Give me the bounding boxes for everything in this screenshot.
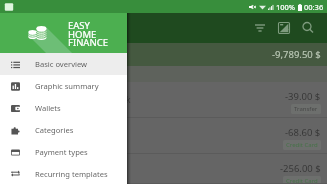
button[interactable]: Wallets — [0, 97, 127, 119]
button[interactable]: Chart — [272, 16, 296, 40]
staticText: -39.00 $ — [285, 90, 321, 103]
button[interactable]: Payment types — [0, 141, 127, 163]
staticText: Wallets — [35, 103, 61, 113]
button[interactable]: Monthly shopping payment — [0, 118, 327, 154]
staticText: Credit Card — [286, 141, 318, 149]
staticText: Categories — [35, 125, 74, 135]
staticText: -9,789.50 $ — [272, 48, 321, 61]
staticText: -68.60 $ — [285, 126, 321, 139]
staticText: Monthly shopping payment — [10, 130, 121, 142]
staticText: Payment types — [35, 147, 88, 157]
button[interactable]: Transfer of money to the bank — [0, 82, 327, 118]
button[interactable]: Recurring templates — [0, 163, 127, 184]
staticText: Recurring templates — [35, 169, 108, 179]
staticText: Transfer — [294, 105, 318, 113]
button[interactable]: Rent — [0, 154, 327, 184]
button[interactable]: Graphic summary — [0, 75, 127, 97]
staticText: 100% — [276, 2, 296, 12]
staticText: Graphic summary — [35, 81, 99, 91]
staticText: 00:36 — [304, 2, 324, 12]
button[interactable]: Filter — [248, 16, 272, 40]
staticText: Transfer of money to the bank — [10, 94, 131, 106]
button[interactable]: Categories — [0, 119, 127, 141]
staticText: Basic overview — [35, 59, 88, 69]
button[interactable]: Search — [296, 16, 320, 40]
staticText: Rent — [10, 163, 29, 175]
staticText: Credit Card — [286, 177, 318, 183]
button[interactable]: Basic overview — [0, 53, 127, 75]
staticText: -256.00 $ — [280, 162, 321, 175]
staticText: EASY HOME FINANCE — [68, 19, 108, 48]
